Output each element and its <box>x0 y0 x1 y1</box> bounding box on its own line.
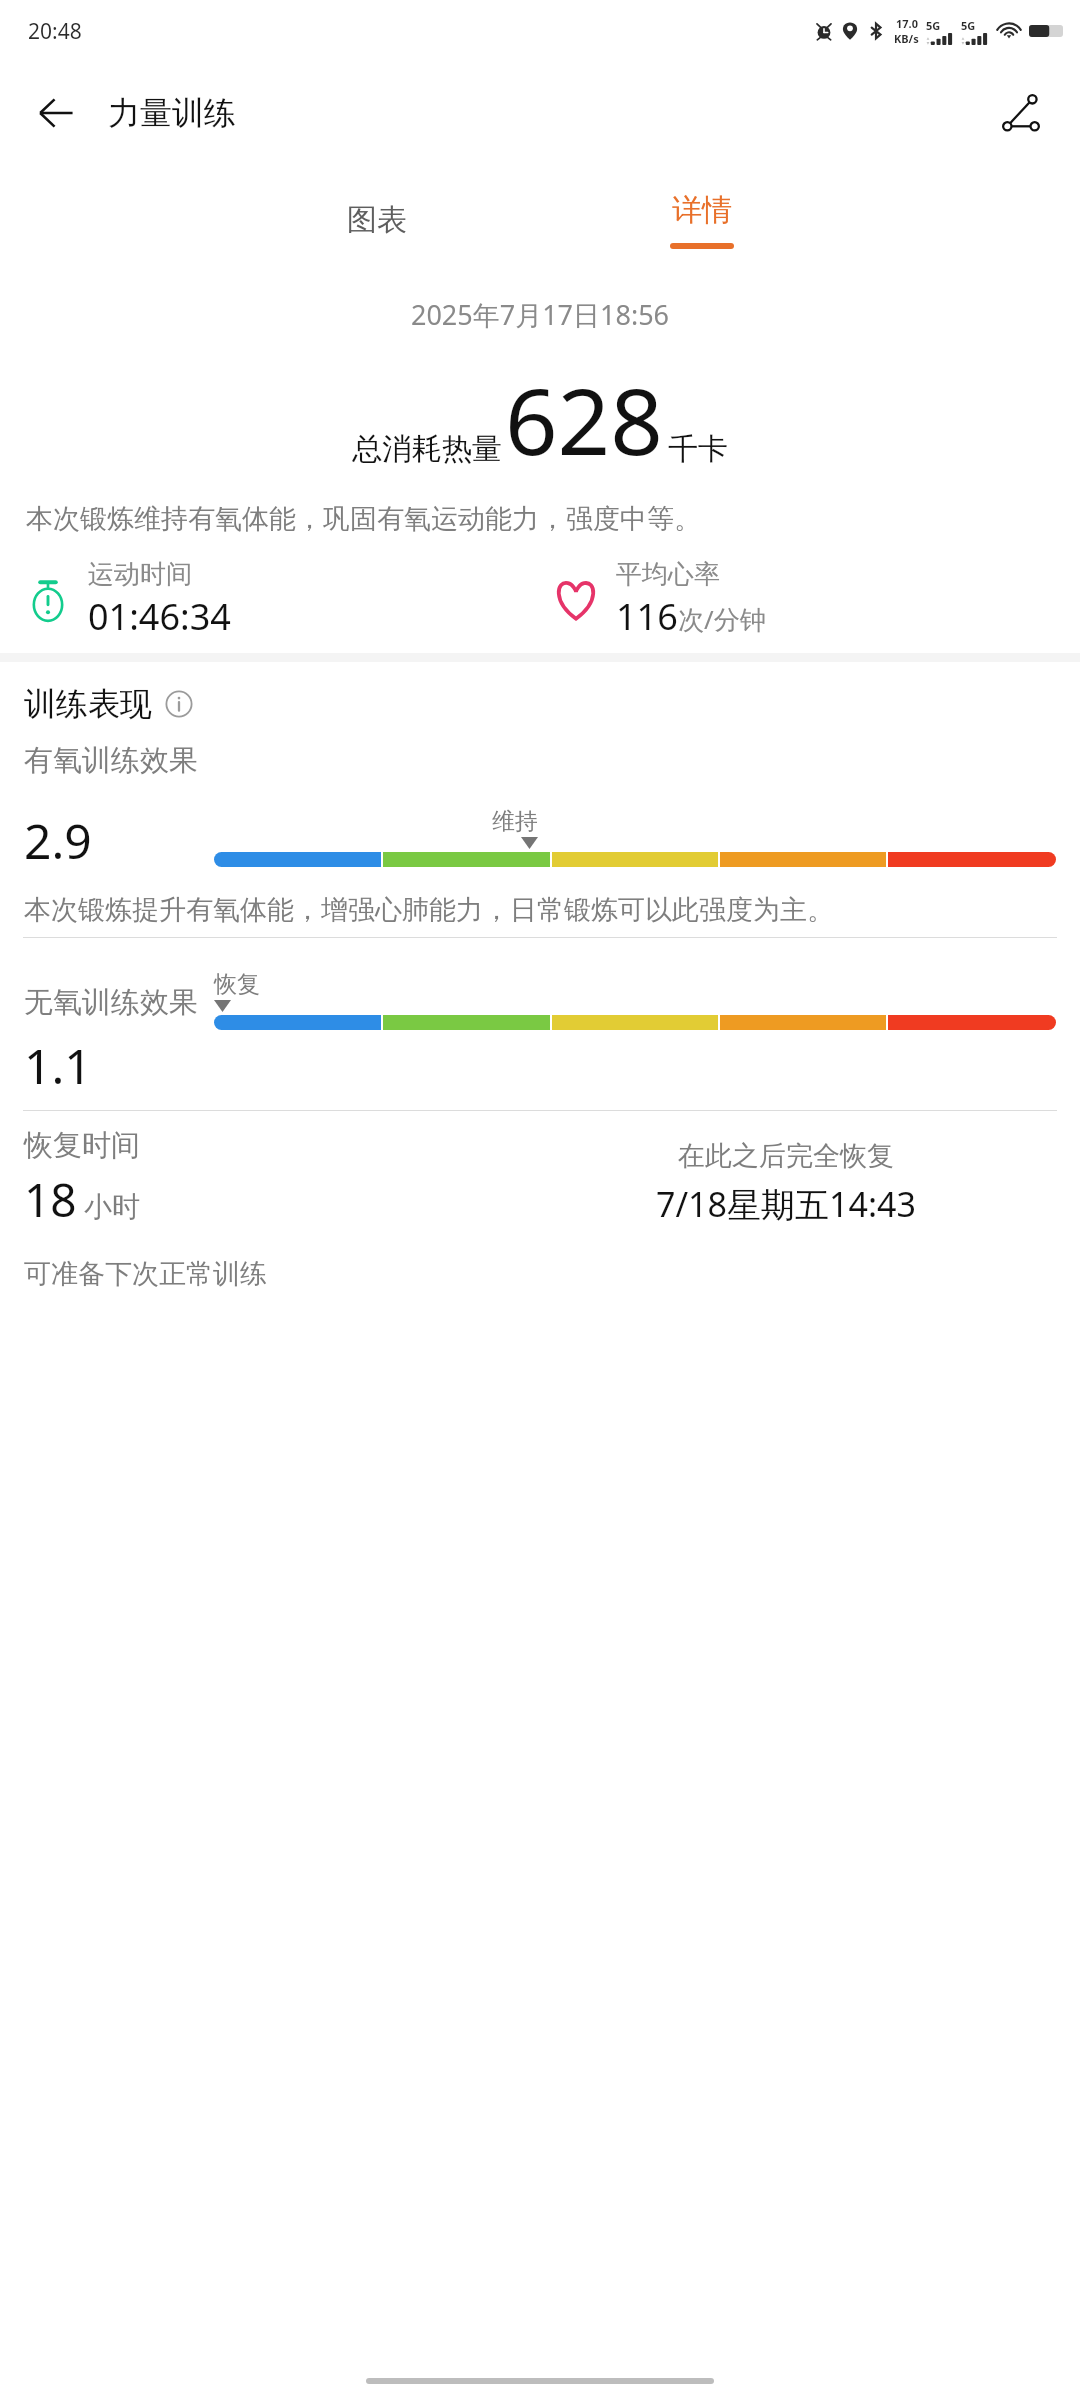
staticText: 训练表现 <box>24 684 152 724</box>
button[interactable]: 详情 <box>602 164 802 276</box>
staticText: 小时 <box>84 1189 140 1224</box>
staticText: 图表 <box>347 201 407 239</box>
staticText: 在此之后完全恢复 <box>678 1139 894 1173</box>
staticText: 7/18星期五14:43 <box>656 1181 916 1227</box>
staticText: 千卡 <box>668 430 728 468</box>
staticText: 116 <box>616 592 678 641</box>
button[interactable]: Back <box>28 85 84 141</box>
button[interactable]: 图表 <box>277 164 477 276</box>
staticText: 5G <box>926 18 941 33</box>
staticText: 无氧训练效果 <box>24 984 198 1021</box>
staticText: 01:46:34 <box>88 592 231 641</box>
staticText: 运动时间 <box>88 558 192 591</box>
staticText: 20:48 <box>28 17 82 46</box>
staticText: 1.1 <box>24 1033 92 1098</box>
staticText: 628 <box>505 357 663 482</box>
button[interactable]: 训练表现 <box>24 684 193 724</box>
staticText: 2025年7月17日18:56 <box>0 296 1080 333</box>
staticText: 详情 <box>672 191 732 229</box>
staticText: 恢复时间 <box>24 1127 140 1164</box>
staticText: 18 <box>24 1168 77 1231</box>
staticText: 17.0 <box>896 16 918 31</box>
staticText: 本次锻炼提升有氧体能，增强心肺能力，日常锻炼可以此强度为主。 <box>24 893 834 927</box>
staticText: 可准备下次正常训练 <box>24 1257 267 1291</box>
staticText: 总消耗热量 <box>352 430 502 468</box>
staticText: 本次锻炼维持有氧体能，巩固有氧运动能力，强度中等。 <box>26 502 701 536</box>
staticText: 力量训练 <box>108 93 236 133</box>
staticText: 平均心率 <box>616 558 720 591</box>
staticText: 2.9 <box>24 808 214 873</box>
staticText: 5G <box>961 18 976 33</box>
staticText: 次/分钟 <box>678 601 766 637</box>
staticText: 维持 <box>492 807 538 836</box>
staticText: 有氧训练效果 <box>24 742 198 779</box>
staticText: 恢复 <box>214 970 260 999</box>
staticText: KB/s <box>894 31 919 46</box>
button[interactable]: Share <box>992 84 1050 142</box>
